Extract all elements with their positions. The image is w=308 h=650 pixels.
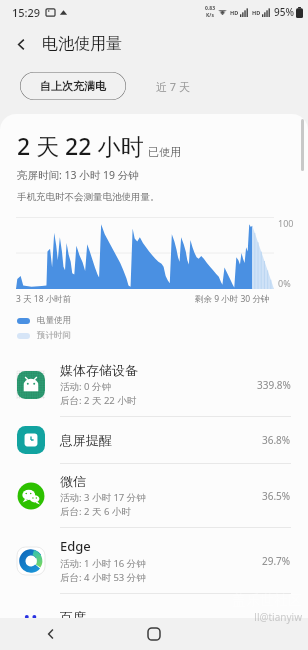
staticText: 百度 — [60, 609, 86, 625]
staticText: 0.83 — [205, 5, 215, 12]
button[interactable]: 自上次充满电 — [20, 72, 126, 100]
staticText: 后台: 2 天 6 小时 — [60, 505, 131, 518]
staticText: 活动: 1 小时 16 分钟 — [60, 557, 146, 570]
staticText: 36.5% — [262, 489, 291, 503]
staticText: 电量使用 — [37, 315, 71, 326]
button[interactable]: Recents — [205, 618, 308, 650]
staticText: 0% — [278, 277, 291, 289]
staticText: 15:29 — [12, 5, 41, 20]
staticText: 已使用 — [148, 145, 181, 159]
staticText: 36.8% — [262, 433, 291, 447]
staticText: 自上次充满电 — [40, 79, 106, 93]
staticText: 95% — [274, 5, 294, 19]
button[interactable]: Back — [0, 618, 102, 650]
staticText: HD — [230, 9, 239, 16]
staticText: Edge — [60, 537, 91, 555]
staticText: HD — [252, 9, 261, 16]
staticText: 后台: 4 小时 53 分钟 — [60, 571, 146, 584]
button[interactable]: 百度 — [0, 594, 308, 640]
staticText: 活动: 3 小时 17 分钟 — [60, 491, 146, 504]
staticText: 手机充电时不会测量电池使用量。 — [17, 191, 160, 203]
staticText: 2 天 22 小时 — [17, 130, 144, 161]
staticText: 微信 — [60, 473, 86, 489]
staticText: 电池使用量 — [42, 34, 122, 54]
staticText: 盖乐世社区 — [232, 592, 302, 610]
staticText: 息屏提醒 — [60, 432, 112, 448]
button[interactable]: 近 7 天 — [148, 72, 199, 100]
staticText: 后台: 2 天 22 小时 — [60, 394, 137, 407]
button[interactable]: Back — [6, 29, 36, 59]
button[interactable]: 微信 — [0, 464, 308, 527]
staticText: 3 天 18 小时前 — [16, 293, 72, 305]
staticText: 近 7 天 — [156, 79, 191, 94]
staticText: 339.8% — [257, 378, 291, 392]
button[interactable]: 息屏提醒 — [0, 417, 308, 463]
staticText: 100 — [278, 217, 294, 229]
staticText: ll@tianyiw — [254, 610, 302, 624]
staticText: 29.7% — [262, 554, 291, 568]
staticText: K/s — [206, 12, 214, 19]
staticText: 预计时间 — [37, 330, 71, 341]
staticText: 剩余 9 小时 30 分钟 — [195, 293, 270, 305]
button[interactable]: Edge — [0, 528, 308, 593]
staticText: 活动: 0 分钟 — [60, 380, 111, 393]
button[interactable]: Home — [102, 618, 205, 650]
button[interactable]: 媒体存储设备 — [0, 353, 308, 416]
staticText: 亮屏时间: 13 小时 19 分钟 — [17, 168, 139, 182]
staticText: 媒体存储设备 — [60, 362, 138, 378]
